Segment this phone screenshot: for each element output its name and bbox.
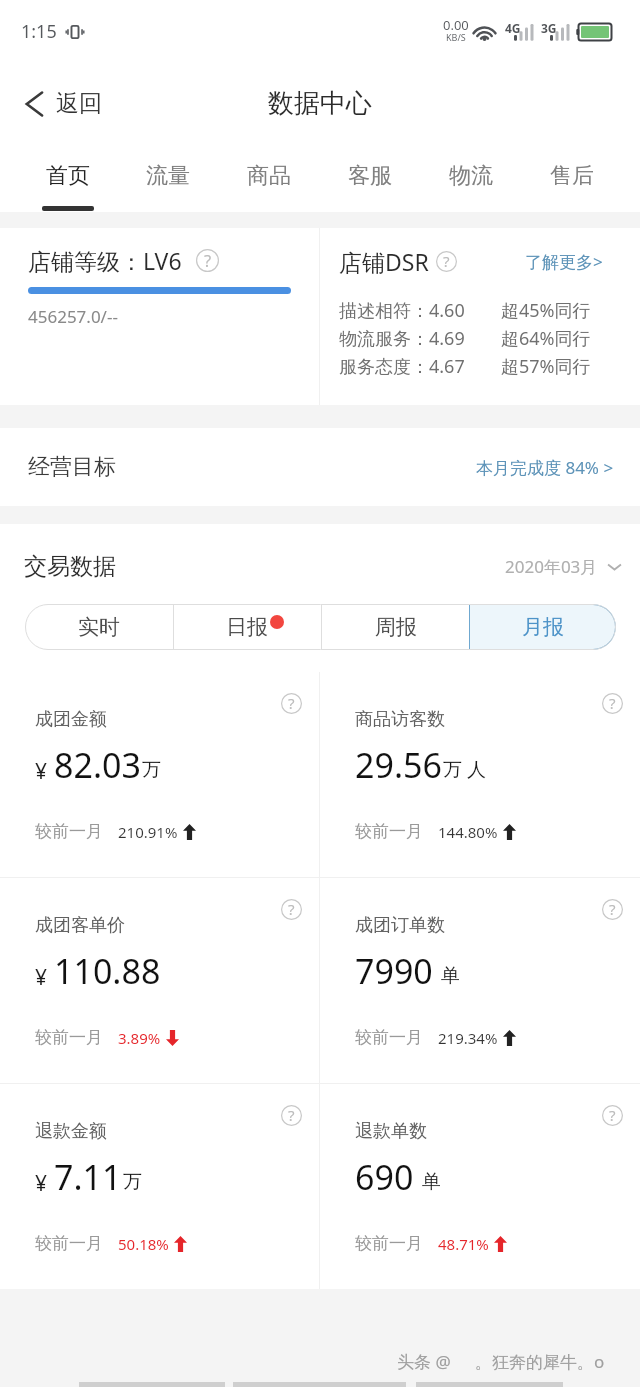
staticText: 经营目标 (28, 453, 116, 481)
staticText: 月报 (522, 614, 564, 640)
staticText: 。狂奔的犀牛。o (475, 1350, 605, 1373)
staticText: 219.34% (438, 1028, 498, 1048)
staticText: 3G (541, 20, 557, 36)
staticText: ¥ (35, 963, 48, 992)
staticText: 较前一月 (355, 1027, 423, 1048)
button[interactable]: Help (281, 899, 302, 920)
staticText: 超45%同行 (501, 298, 591, 323)
staticText: 144.80% (438, 822, 498, 842)
staticText: ? (609, 899, 616, 920)
staticText: 较前一月 (355, 821, 423, 842)
staticText: ? (288, 1105, 295, 1126)
staticText: 客服 (348, 162, 392, 190)
button[interactable]: 经营目标 (0, 428, 640, 506)
staticText: 头条 @ (397, 1350, 451, 1373)
staticText: 万 (123, 1170, 142, 1194)
staticText: 82.03 (54, 742, 141, 788)
button[interactable]: 实时 (25, 604, 173, 650)
staticText: 2020年03月 (505, 555, 598, 578)
staticText: 7.11 (54, 1154, 122, 1200)
staticText: 超57%同行 (501, 354, 591, 379)
staticText: ? (288, 693, 295, 714)
button[interactable]: 日报 (174, 604, 321, 650)
staticText: ? (609, 693, 616, 714)
staticText: 流量 (146, 162, 190, 190)
staticText: 退款金额 (35, 1120, 107, 1143)
staticText: 商品访客数 (355, 708, 445, 731)
staticText: 首页 (46, 162, 90, 190)
staticText: 单 (441, 964, 460, 988)
staticText: 29.56 (355, 742, 442, 788)
staticText: 超64%同行 (501, 326, 591, 351)
staticText: 成团订单数 (355, 914, 445, 937)
button[interactable]: Help (281, 1105, 302, 1126)
button[interactable]: 客服 (319, 140, 420, 212)
staticText: 描述相符：4.60 (339, 298, 465, 323)
staticText: 50.18% (118, 1234, 169, 1254)
button[interactable]: 周报 (322, 604, 469, 650)
button[interactable]: 成团金额 (0, 672, 319, 877)
staticText: 较前一月 (35, 821, 103, 842)
button[interactable]: 成团客单价 (0, 878, 319, 1083)
staticText: 单 (422, 1170, 441, 1194)
button[interactable]: 月报 (469, 604, 616, 650)
staticText: ? (288, 899, 295, 920)
button[interactable]: 物流 (420, 140, 521, 212)
staticText: 店铺DSR (339, 246, 429, 277)
button[interactable]: 成团订单数 (320, 878, 640, 1083)
staticText: 较前一月 (35, 1027, 103, 1048)
staticText: 4G (505, 20, 521, 36)
button[interactable]: 流量 (118, 140, 218, 212)
staticText: 成团客单价 (35, 914, 125, 937)
staticText: 物流 (449, 162, 493, 190)
staticText: ? (204, 249, 212, 272)
staticText: 7990 (355, 948, 433, 994)
button[interactable]: Back (0, 79, 126, 128)
staticText: 物流服务：4.69 (339, 326, 465, 351)
button[interactable]: Help (281, 693, 302, 714)
button[interactable]: Help (436, 251, 457, 272)
staticText: 3.89% (118, 1028, 161, 1048)
staticText: 0.00 (443, 16, 469, 34)
staticText: 返回 (56, 89, 102, 118)
button[interactable]: 首页 (18, 140, 118, 212)
button[interactable]: 退款金额 (0, 1084, 319, 1289)
staticText: KB/S (446, 31, 466, 43)
staticText: 210.91% (118, 822, 178, 842)
staticText: 数据中心 (268, 87, 372, 120)
staticText: ? (443, 251, 450, 272)
other: Back (25, 91, 43, 117)
button[interactable]: Help (602, 899, 623, 920)
staticText: 日报 (226, 614, 268, 640)
staticText: 本月完成度 84% > (476, 456, 614, 479)
staticText: 售后 (550, 162, 594, 190)
button[interactable]: 退款单数 (320, 1084, 640, 1289)
staticText: ? (609, 1105, 616, 1126)
button[interactable]: 2020年03月 (505, 555, 623, 578)
staticText: 较前一月 (35, 1233, 103, 1254)
button[interactable]: Help (602, 1105, 623, 1126)
staticText: 退款单数 (355, 1120, 427, 1143)
staticText: 服务态度：4.67 (339, 354, 465, 379)
button[interactable]: 商品 (218, 140, 319, 212)
button[interactable]: 商品访客数 (320, 672, 640, 877)
staticText: 交易数据 (24, 552, 116, 581)
button[interactable]: Help (196, 249, 219, 272)
staticText: 店铺等级：LV6 (28, 245, 182, 276)
staticText: 万 人 (443, 756, 486, 782)
staticText: 690 (355, 1154, 414, 1200)
staticText: 456257.0/-- (28, 305, 118, 328)
button[interactable]: 店铺等级：LV6 (0, 228, 319, 405)
button[interactable]: 售后 (521, 140, 622, 212)
button[interactable]: 了解更多> (525, 250, 603, 273)
staticText: 110.88 (54, 948, 161, 994)
staticText: 较前一月 (355, 1233, 423, 1254)
staticText: 实时 (78, 614, 120, 640)
staticText: 成团金额 (35, 708, 107, 731)
staticText: 1:15 (21, 19, 57, 44)
staticText: 商品 (247, 162, 291, 190)
staticText: 周报 (375, 614, 417, 640)
staticText: 48.71% (438, 1234, 489, 1254)
button[interactable]: Help (602, 693, 623, 714)
staticText: 万 (142, 758, 161, 782)
